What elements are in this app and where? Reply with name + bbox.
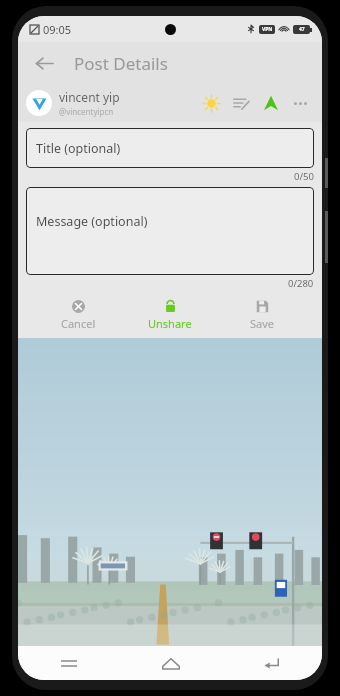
- button[interactable]: More options: [286, 89, 314, 117]
- staticText: 0/50: [294, 170, 314, 183]
- button[interactable]: Message (optional): [26, 187, 314, 275]
- button[interactable]: Recent apps: [18, 646, 120, 680]
- button[interactable]: Cancel: [32, 292, 124, 338]
- button[interactable]: Weather: [196, 88, 226, 118]
- staticText: Title (optional): [36, 140, 121, 157]
- button[interactable]: Unshare: [124, 292, 216, 338]
- staticText: Post Details: [74, 52, 168, 75]
- staticText: Cancel: [61, 316, 96, 331]
- staticText: 0/280: [288, 277, 314, 290]
- staticText: @vincentyipcn: [59, 106, 114, 117]
- staticText: 47: [299, 26, 305, 33]
- staticText: VPN: [262, 26, 273, 33]
- button[interactable]: Edit: [226, 88, 256, 118]
- button[interactable]: Navigate: [256, 88, 286, 118]
- button[interactable]: Title (optional): [26, 128, 314, 168]
- button[interactable]: Home: [120, 646, 221, 680]
- staticText: Message (optional): [36, 213, 148, 230]
- staticText: Unshare: [148, 316, 192, 331]
- staticText: Save: [250, 316, 275, 331]
- staticText: vincent yip: [59, 89, 120, 105]
- staticText: 09:05: [43, 22, 72, 37]
- button[interactable]: Back: [24, 43, 64, 83]
- button[interactable]: Save: [216, 292, 308, 338]
- button[interactable]: Back: [221, 646, 322, 680]
- button[interactable]: Profile avatar: [26, 90, 52, 116]
